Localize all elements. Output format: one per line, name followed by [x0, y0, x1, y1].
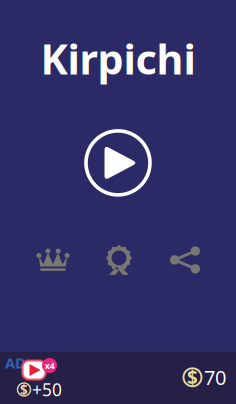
staticText: AD — [5, 353, 26, 372]
button[interactable]: Leaderboard — [20, 245, 86, 275]
staticText: x4 — [44, 359, 54, 372]
staticText: $ — [20, 381, 28, 398]
button[interactable]: Play — [83, 128, 153, 198]
staticText: +50 — [32, 378, 62, 401]
staticText: 70 — [204, 364, 226, 391]
staticText: $ — [187, 365, 198, 390]
button[interactable]: Watch ad for 50 coins — [0, 352, 70, 398]
staticText: Kirpichi — [40, 31, 195, 86]
button[interactable]: Achievements — [86, 245, 152, 275]
button[interactable]: Share — [152, 245, 218, 275]
